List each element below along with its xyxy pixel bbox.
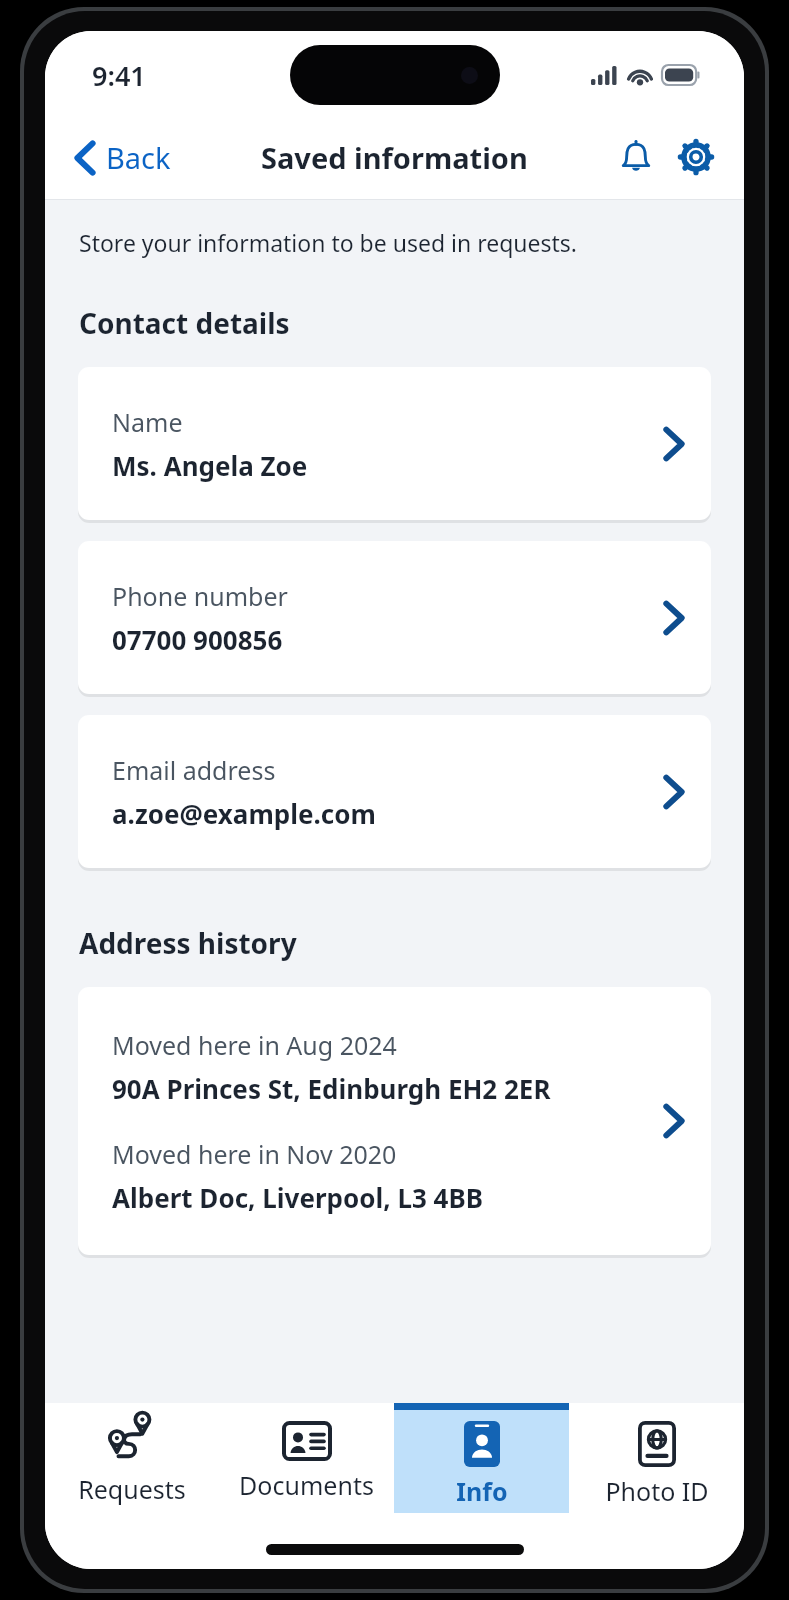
staticText: Back	[106, 138, 171, 177]
staticText: Name	[112, 405, 183, 439]
staticText: Ms. Angela Zoe	[112, 448, 308, 483]
staticText: Phone number	[112, 579, 288, 613]
button[interactable]: Requests	[45, 1403, 219, 1513]
staticText: 07700 900856	[112, 622, 283, 657]
button[interactable]: Photo ID	[569, 1403, 744, 1513]
button[interactable]: Settings	[670, 131, 722, 183]
button[interactable]: Moved here in Aug 2024	[78, 987, 711, 1255]
staticText: 9:41	[92, 57, 146, 94]
staticText: Email address	[112, 753, 276, 787]
button[interactable]: Email address	[78, 715, 711, 868]
staticText: Albert Doc, Liverpool, L3 4BB	[112, 1180, 483, 1215]
button[interactable]: Back	[45, 128, 187, 187]
staticText: Moved here in Nov 2020	[112, 1137, 397, 1171]
staticText: Contact details	[79, 304, 290, 342]
staticText: a.zoe@example.com	[112, 796, 376, 831]
staticText: Store your information to be used in req…	[79, 227, 577, 258]
staticText: Documents	[239, 1468, 374, 1502]
button[interactable]: Name	[78, 367, 711, 520]
staticText: Info	[456, 1474, 508, 1508]
staticText: Photo ID	[605, 1474, 709, 1508]
staticText: Requests	[78, 1472, 186, 1506]
staticText: Address history	[79, 924, 297, 962]
button[interactable]: Info	[394, 1403, 569, 1513]
button[interactable]: Documents	[219, 1403, 394, 1513]
staticText: Saved information	[261, 138, 528, 177]
button[interactable]: Notifications	[610, 131, 662, 183]
staticText: Moved here in Aug 2024	[112, 1028, 397, 1062]
button[interactable]: Phone number	[78, 541, 711, 694]
staticText: 90A Princes St, Edinburgh EH2 2ER	[112, 1071, 551, 1106]
